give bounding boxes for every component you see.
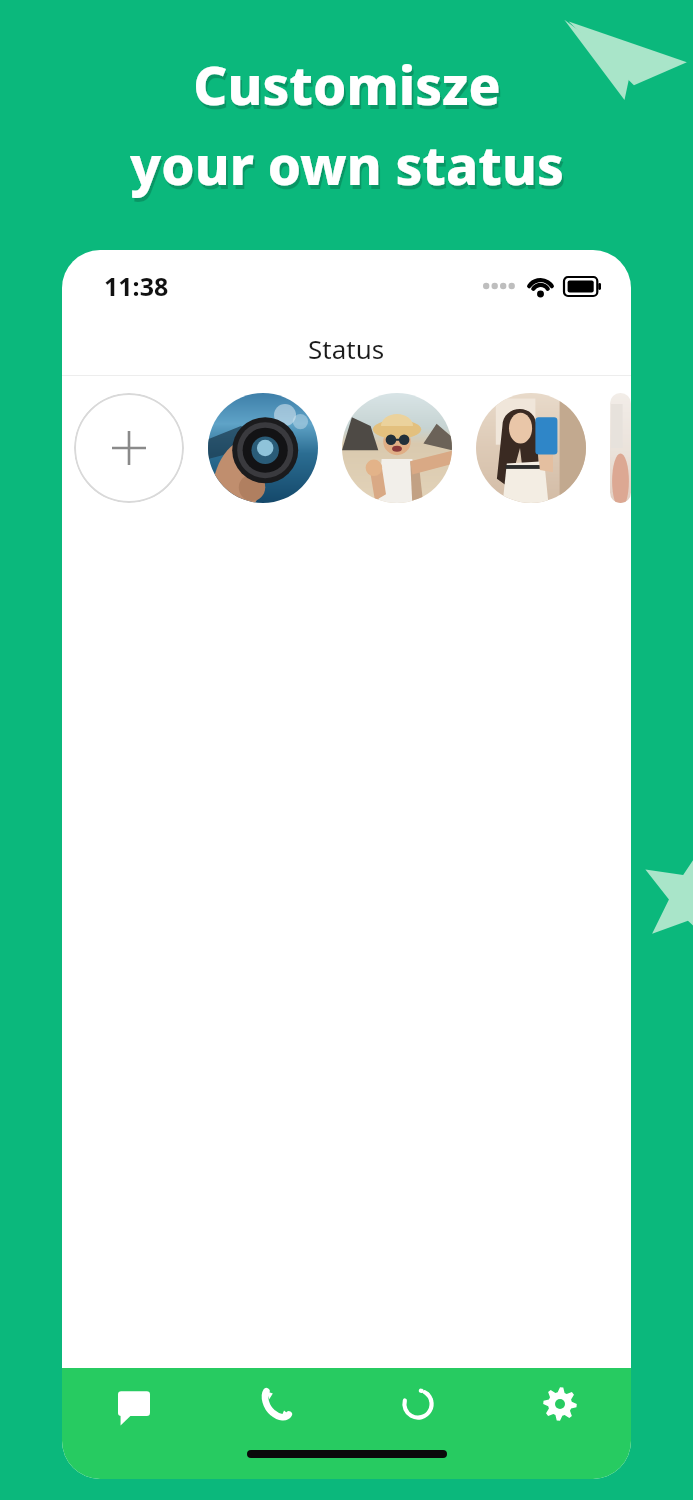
button[interactable]: Status update 3: [476, 393, 586, 503]
button[interactable]: Status update 2: [342, 393, 452, 503]
button[interactable]: Add status: [74, 393, 184, 503]
staticText: 11:38: [104, 269, 169, 303]
staticText: your own status: [130, 128, 564, 200]
button[interactable]: Calls: [205, 1368, 347, 1440]
staticText: your own status: [132, 132, 566, 204]
button[interactable]: Chats: [62, 1368, 205, 1440]
button[interactable]: Status update 4: [610, 393, 631, 503]
staticText: Customisze: [193, 48, 501, 120]
button[interactable]: Status update 1: [208, 393, 318, 503]
button[interactable]: Status: [347, 1368, 489, 1440]
staticText: Customisze: [195, 52, 503, 124]
button[interactable]: Settings: [489, 1368, 631, 1440]
staticText: Status: [308, 331, 385, 366]
